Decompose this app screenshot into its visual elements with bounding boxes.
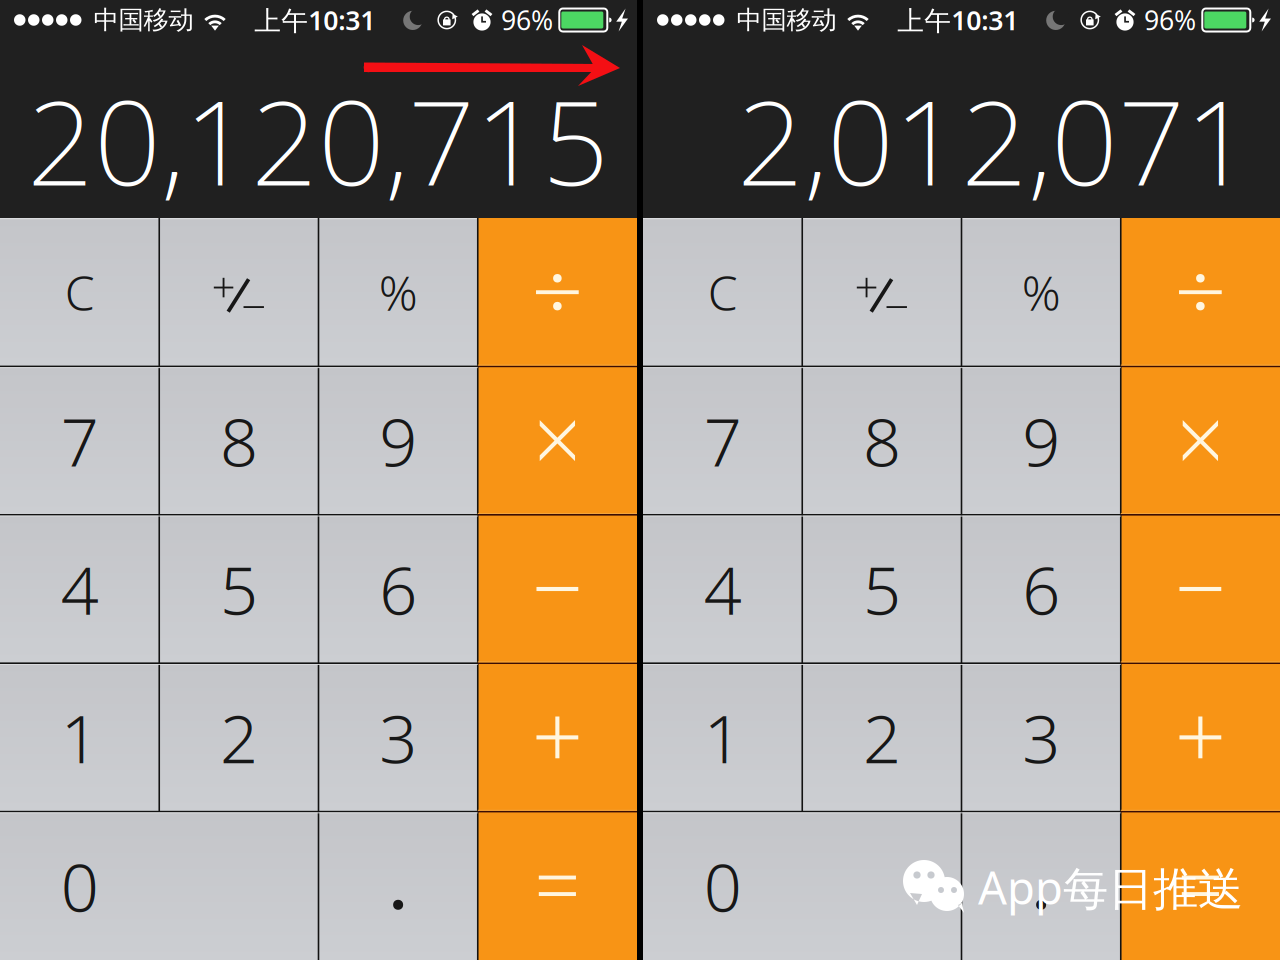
button[interactable]: 2	[159, 663, 318, 812]
staticText: 5	[863, 545, 901, 633]
button[interactable]: 8	[159, 366, 318, 515]
staticText: C	[708, 260, 738, 324]
button[interactable]: 7	[643, 366, 802, 515]
button[interactable]: Decimal point	[961, 812, 1121, 960]
staticText: 9	[1022, 396, 1060, 485]
button[interactable]: 6	[318, 515, 478, 663]
button[interactable]: Equals	[478, 812, 637, 960]
button[interactable]: %	[318, 218, 478, 366]
staticText: 6	[379, 545, 417, 633]
staticText: 4	[704, 545, 742, 633]
button[interactable]: Multiply	[1121, 366, 1280, 515]
staticText: 1	[704, 693, 742, 782]
staticText: 8	[863, 396, 901, 485]
staticText: 2,012,071	[737, 62, 1252, 218]
button[interactable]: 4	[643, 515, 802, 663]
button[interactable]: 5	[802, 515, 961, 663]
staticText: C	[65, 260, 95, 324]
staticText: 上午10:31	[897, 2, 1018, 38]
button[interactable]: 6	[961, 515, 1121, 663]
button[interactable]: Subtract	[478, 515, 637, 663]
staticText: 20,120,715	[27, 62, 609, 218]
button[interactable]: 7	[0, 366, 159, 515]
staticText: 0	[61, 841, 99, 930]
staticText: %	[1022, 260, 1061, 324]
staticText: 8	[220, 396, 258, 485]
button[interactable]: %	[961, 218, 1121, 366]
button[interactable]: 3	[318, 663, 478, 812]
button[interactable]: 0	[643, 812, 961, 960]
staticText: %	[379, 260, 418, 324]
button[interactable]: 1	[643, 663, 802, 812]
staticText: 中国移动	[93, 4, 193, 35]
button[interactable]: 5	[159, 515, 318, 663]
button[interactable]: 9	[961, 366, 1121, 515]
staticText: 9	[379, 396, 417, 485]
staticText: 2	[220, 693, 258, 782]
button[interactable]: Add	[1121, 663, 1280, 812]
button[interactable]: Add	[478, 663, 637, 812]
staticText: 3	[379, 693, 417, 782]
staticText: 7	[704, 396, 742, 485]
staticText: 2	[863, 693, 901, 782]
button[interactable]: Subtract	[1121, 515, 1280, 663]
button[interactable]: 1	[0, 663, 159, 812]
staticText: App每日推送	[978, 857, 1243, 917]
button[interactable]: 0	[0, 812, 318, 960]
staticText: 3	[1022, 693, 1060, 782]
button[interactable]: 2	[802, 663, 961, 812]
button[interactable]: 3	[961, 663, 1121, 812]
button[interactable]: 8	[802, 366, 961, 515]
button[interactable]: 9	[318, 366, 478, 515]
staticText: 中国移动	[736, 4, 836, 35]
staticText: 96%	[1144, 2, 1196, 38]
button[interactable]: C	[643, 218, 802, 366]
button[interactable]: Decimal point	[318, 812, 478, 960]
button[interactable]: Plus minus	[159, 218, 318, 366]
button[interactable]: C	[0, 218, 159, 366]
button[interactable]: Divide	[1121, 218, 1280, 366]
staticText: 5	[220, 545, 258, 633]
staticText: 4	[61, 545, 99, 633]
staticText: 6	[1022, 545, 1060, 633]
button[interactable]: Divide	[478, 218, 637, 366]
staticText: 96%	[501, 2, 553, 38]
button[interactable]: Plus minus	[802, 218, 961, 366]
staticText: 7	[61, 396, 99, 485]
staticText: 1	[61, 693, 99, 782]
staticText: 0	[704, 841, 742, 930]
staticText: 上午10:31	[254, 2, 375, 38]
button[interactable]: 4	[0, 515, 159, 663]
button[interactable]: Multiply	[478, 366, 637, 515]
button[interactable]: Equals	[1121, 812, 1280, 960]
